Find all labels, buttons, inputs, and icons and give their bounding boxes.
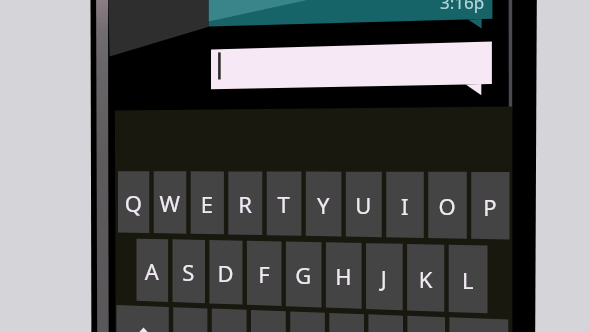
button[interactable]	[0, 0, 590, 332]
